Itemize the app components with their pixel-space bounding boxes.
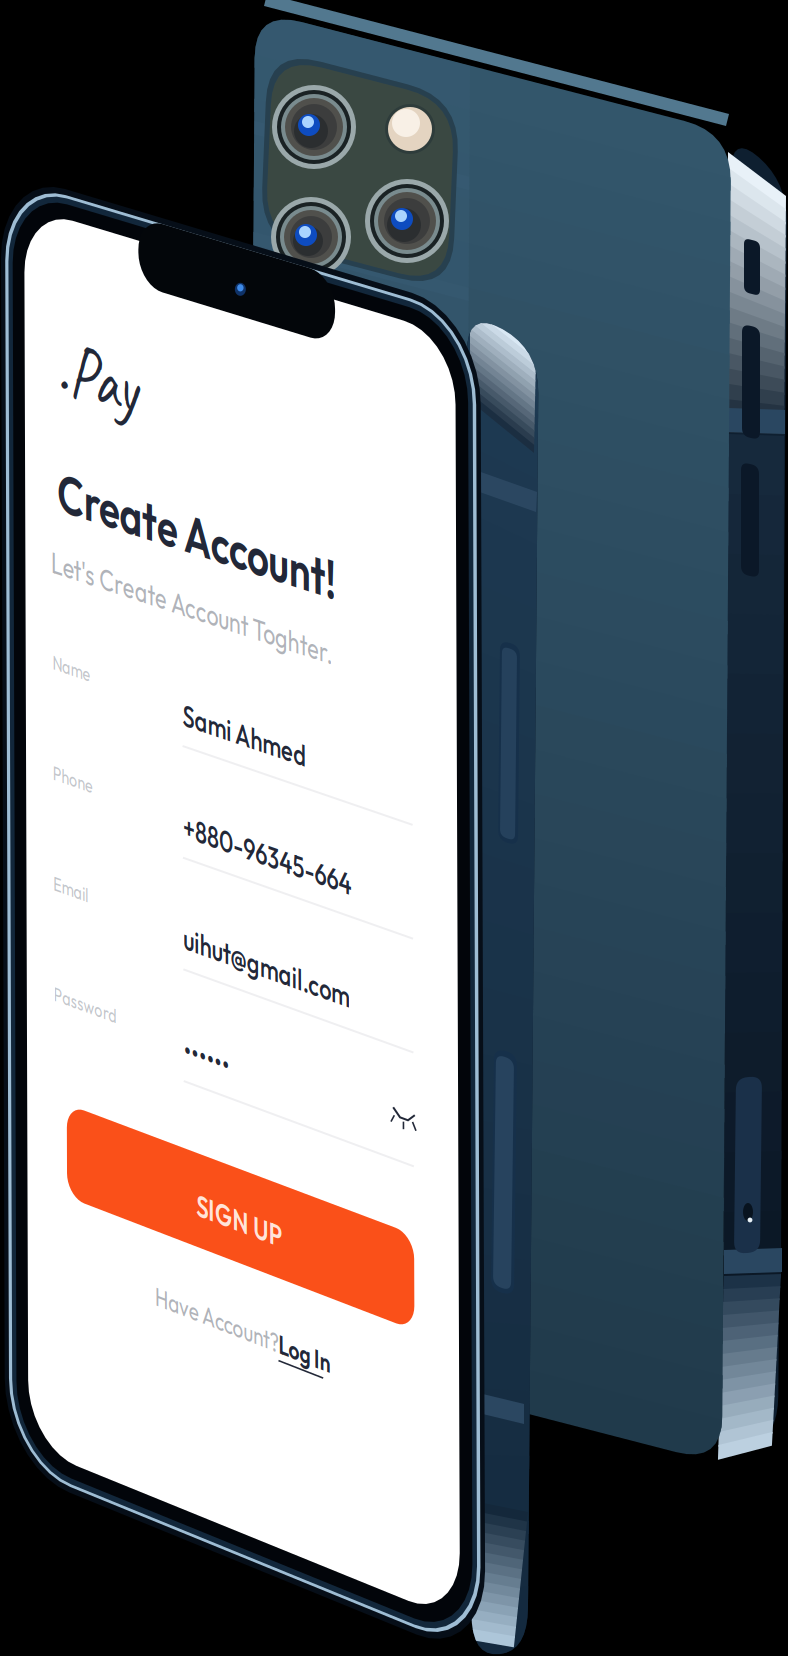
staticText: Phone xyxy=(53,760,90,777)
button[interactable]: SIGN UP xyxy=(0,0,788,1656)
staticText: Have Account? xyxy=(155,1279,269,1301)
staticText: uihut@gmail.com xyxy=(183,919,335,944)
button[interactable]: Show password xyxy=(0,0,788,1656)
staticText: Let's Create Account Toghter. xyxy=(51,543,314,568)
staticText: •••••• xyxy=(184,1030,226,1056)
button[interactable]: Have Account? xyxy=(0,0,788,1656)
staticText: Email xyxy=(53,870,86,887)
staticText: SIGN UP xyxy=(196,1185,274,1211)
staticText: Sami Ahmed xyxy=(182,695,295,721)
staticText: Log In xyxy=(278,1327,325,1349)
staticText: +880-96345-664 xyxy=(183,807,337,832)
staticText: .Pay xyxy=(57,314,131,382)
staticText: Name xyxy=(52,649,87,666)
staticText: Password xyxy=(53,981,112,998)
staticText: Create Account! xyxy=(57,457,317,503)
